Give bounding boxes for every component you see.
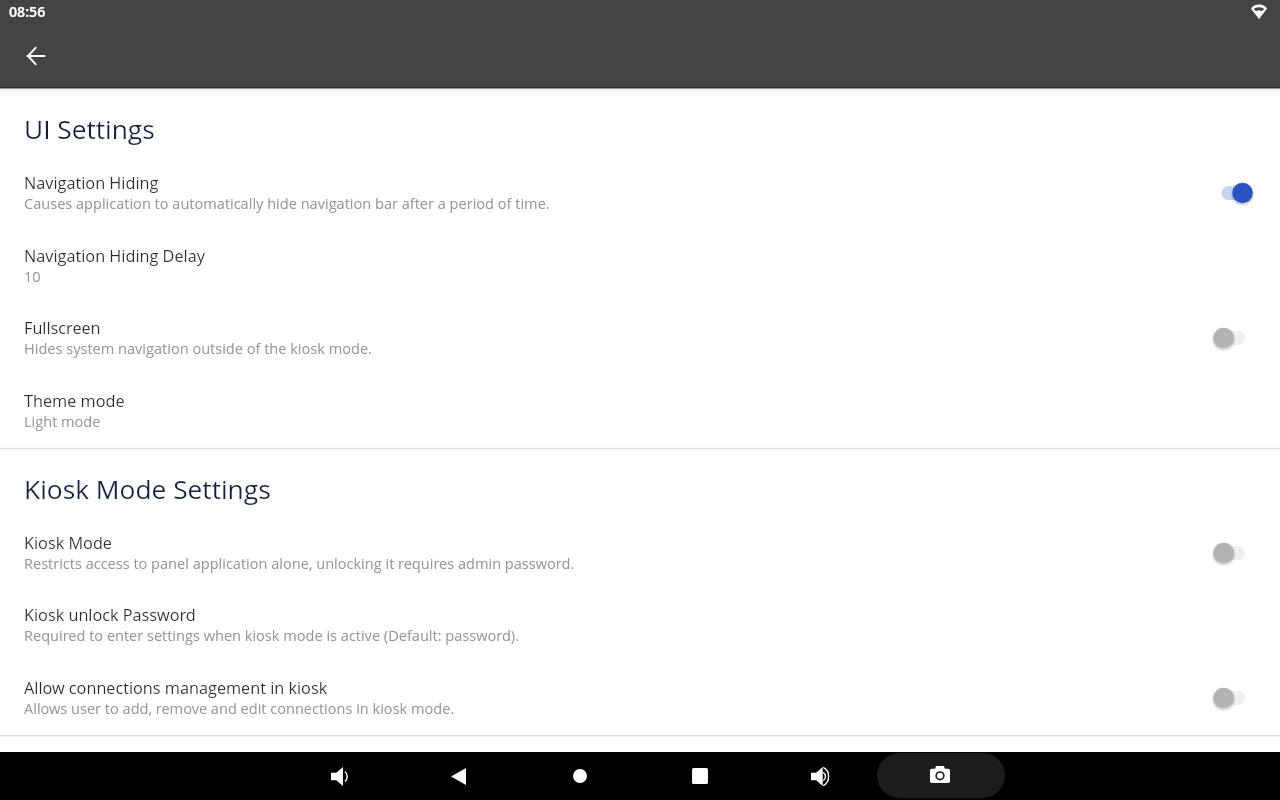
staticText: Allows user to add, remove and edit conn… [24, 698, 455, 718]
staticText: Fullscreen [24, 317, 101, 339]
staticText: Light mode [24, 411, 101, 431]
button[interactable]: Screenshot [877, 753, 1005, 798]
button[interactable]: Allow connections management in kiosk [1205, 684, 1253, 712]
staticText: Theme mode [24, 390, 125, 412]
button[interactable]: Kiosk Mode [1205, 539, 1253, 567]
button[interactable]: Kiosk Mode [0, 520, 1280, 582]
staticText: Kiosk Mode [24, 532, 112, 554]
button[interactable]: Volume down [315, 752, 364, 800]
button[interactable]: Fullscreen [1205, 324, 1253, 352]
button[interactable]: Recent apps [676, 752, 724, 800]
staticText: Kiosk Mode Settings [24, 471, 271, 507]
staticText: UI Settings [24, 111, 155, 147]
button[interactable]: Home [557, 752, 603, 800]
staticText: Restricts access to panel application al… [24, 553, 575, 573]
staticText: Kiosk unlock Password [24, 604, 196, 626]
button[interactable]: Theme mode [0, 378, 1280, 440]
button[interactable]: Navigation Hiding [1213, 179, 1261, 207]
staticText: Causes application to automatically hide… [24, 193, 550, 213]
button[interactable]: Navigate up [13, 32, 61, 80]
staticText: 08:56 [9, 2, 46, 21]
button[interactable]: Volume up [795, 752, 846, 800]
staticText: Navigation Hiding Delay [24, 245, 205, 267]
button[interactable]: Navigation Hiding [0, 160, 1280, 222]
button[interactable]: Fullscreen [0, 305, 1280, 367]
button[interactable]: Back [435, 752, 482, 800]
button[interactable]: Allow connections management in kiosk [0, 665, 1280, 727]
staticText: Navigation Hiding [24, 172, 159, 194]
button[interactable]: Kiosk unlock Password [0, 592, 1280, 654]
staticText: Hides system navigation outside of the k… [24, 338, 372, 358]
staticText: 10 [24, 266, 41, 286]
staticText: Allow connections management in kiosk [24, 677, 328, 699]
staticText: Required to enter settings when kiosk mo… [24, 625, 520, 645]
button[interactable]: Navigation Hiding Delay [0, 233, 1280, 295]
